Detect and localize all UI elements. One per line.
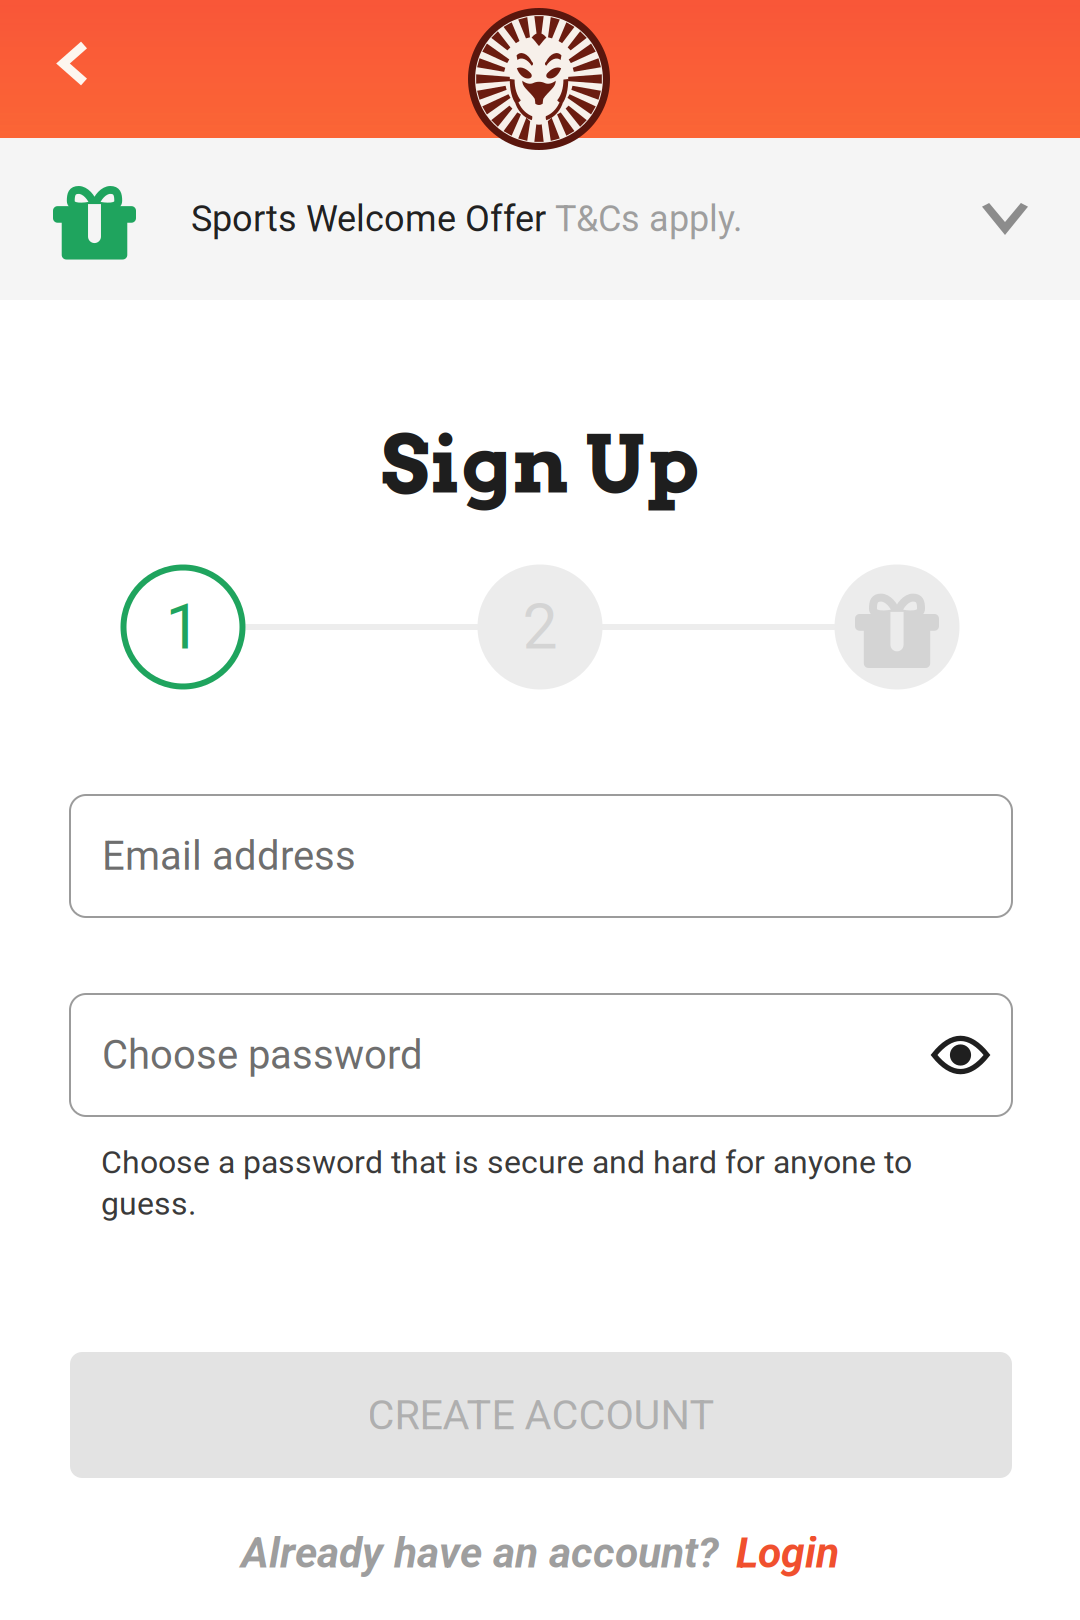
staticText: CREATE ACCOUNT (367, 1391, 714, 1439)
staticText: Choose a password that is secure and har… (101, 1143, 912, 1181)
staticText: T&Cs apply. (555, 198, 742, 240)
button[interactable]: Back (0, 0, 146, 138)
button[interactable]: Show password (910, 1001, 1011, 1108)
staticText: Login (736, 1528, 839, 1578)
button[interactable]: Sports Welcome Offer (0, 138, 1080, 300)
staticText: guess. (101, 1185, 196, 1222)
staticText: 1 (165, 590, 200, 664)
staticText: 2 (522, 590, 557, 664)
staticText: Sign Up (381, 416, 699, 512)
staticText: Email address (102, 833, 356, 879)
staticText: Choose password (102, 1032, 423, 1078)
button[interactable]: CREATE ACCOUNT (70, 1352, 1012, 1478)
button[interactable]: Already have an account? (69, 1505, 1011, 1601)
staticText: Sports Welcome Offer (191, 198, 555, 240)
staticText: Already have an account? (241, 1528, 719, 1578)
